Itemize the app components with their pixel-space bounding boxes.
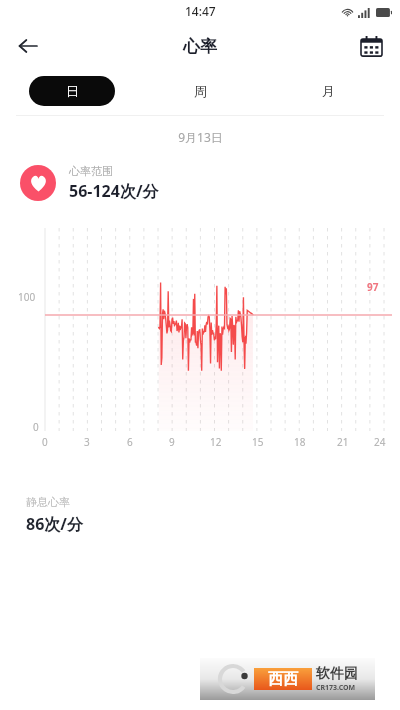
staticText: 6 — [127, 435, 133, 449]
staticText: 56-124次/分 — [69, 180, 159, 202]
staticText: 9月13日 — [178, 129, 223, 145]
staticText: 静息心率 — [26, 495, 70, 509]
button[interactable]: 心率范围 — [20, 164, 400, 202]
button[interactable]: Back — [8, 26, 48, 66]
staticText: 软件园 — [316, 665, 358, 683]
staticText: 日 — [66, 83, 79, 99]
staticText: 西西 — [268, 670, 298, 689]
staticText: 14:47 — [185, 3, 216, 19]
staticText: 心率范围 — [69, 164, 113, 178]
button[interactable]: 月 — [285, 76, 371, 106]
staticText: 100 — [18, 290, 36, 304]
staticText: 月 — [322, 83, 335, 99]
staticText: 心率 — [183, 36, 217, 57]
staticText: CR173.COM — [316, 683, 356, 693]
staticText: 97 — [367, 280, 379, 294]
staticText: 9 — [169, 435, 175, 449]
button[interactable]: Calendar — [351, 26, 391, 66]
staticText: 86次/分 — [26, 513, 83, 535]
button[interactable]: 日 — [29, 76, 115, 106]
staticText: 0 — [42, 435, 48, 449]
staticText: 周 — [194, 83, 207, 99]
staticText: 15 — [252, 435, 264, 449]
staticText: 18 — [294, 435, 306, 449]
staticText: 0 — [33, 420, 39, 434]
staticText: 3 — [84, 435, 90, 449]
staticText: 24 — [374, 435, 386, 449]
staticText: 21 — [337, 435, 349, 449]
staticText: 12 — [210, 435, 222, 449]
button[interactable]: 周 — [157, 76, 243, 106]
